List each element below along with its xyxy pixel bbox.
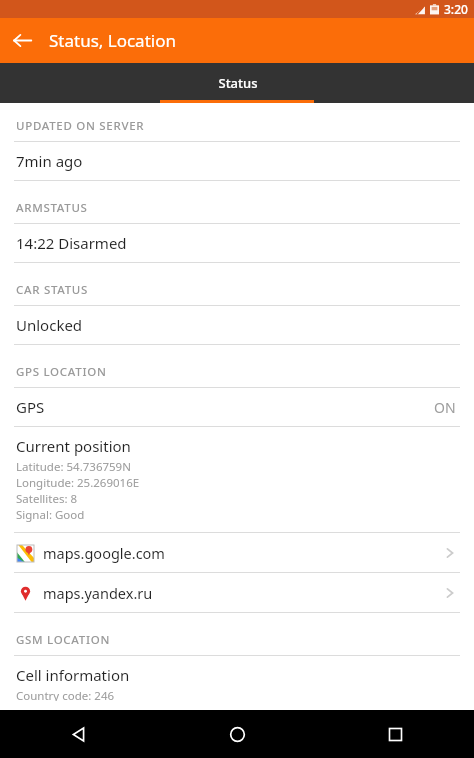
button[interactable]: 14:22 Disarmed [0, 224, 474, 262]
staticText: 7min ago [16, 151, 83, 171]
staticText: 14:22 Disarmed [16, 233, 127, 253]
staticText: Country code: 246 [16, 688, 115, 701]
staticText: GPS [16, 397, 45, 417]
staticText: ARMSTATUS [16, 200, 88, 216]
button[interactable]: Current position [0, 427, 474, 532]
staticText: Current position [16, 436, 131, 456]
staticText: CAR STATUS [16, 282, 89, 298]
button[interactable]: Back [0, 710, 158, 758]
staticText: Cell information [16, 665, 130, 685]
staticText: Longitude: 25.269016E [16, 475, 140, 491]
staticText: Signal: Good [16, 507, 85, 523]
button[interactable]: Recent apps [316, 710, 474, 758]
button[interactable]: Home [158, 710, 316, 758]
staticText: Status, Location [49, 29, 176, 52]
button[interactable]: maps.yandex.ru [0, 573, 474, 612]
button[interactable]: Back [0, 18, 45, 63]
button[interactable]: Unlocked [0, 306, 474, 344]
staticText: GSM LOCATION [16, 632, 111, 648]
staticText: Satellites: 8 [16, 491, 78, 507]
staticText: ON [434, 398, 456, 417]
staticText: UPDATED ON SERVER [16, 118, 145, 134]
staticText: maps.google.com [43, 543, 165, 563]
button[interactable]: Cell information [0, 656, 474, 710]
button[interactable]: GPS [0, 388, 474, 426]
staticText: Status [218, 74, 258, 92]
button[interactable]: 7min ago [0, 142, 474, 180]
staticText: 3:20 [444, 1, 468, 17]
button[interactable]: maps.google.com [0, 533, 474, 572]
staticText: maps.yandex.ru [43, 583, 153, 603]
staticText: Latitude: 54.736759N [16, 459, 131, 475]
button[interactable]: Status [158, 63, 317, 103]
staticText: Unlocked [16, 315, 83, 335]
staticText: GPS LOCATION [16, 364, 107, 380]
